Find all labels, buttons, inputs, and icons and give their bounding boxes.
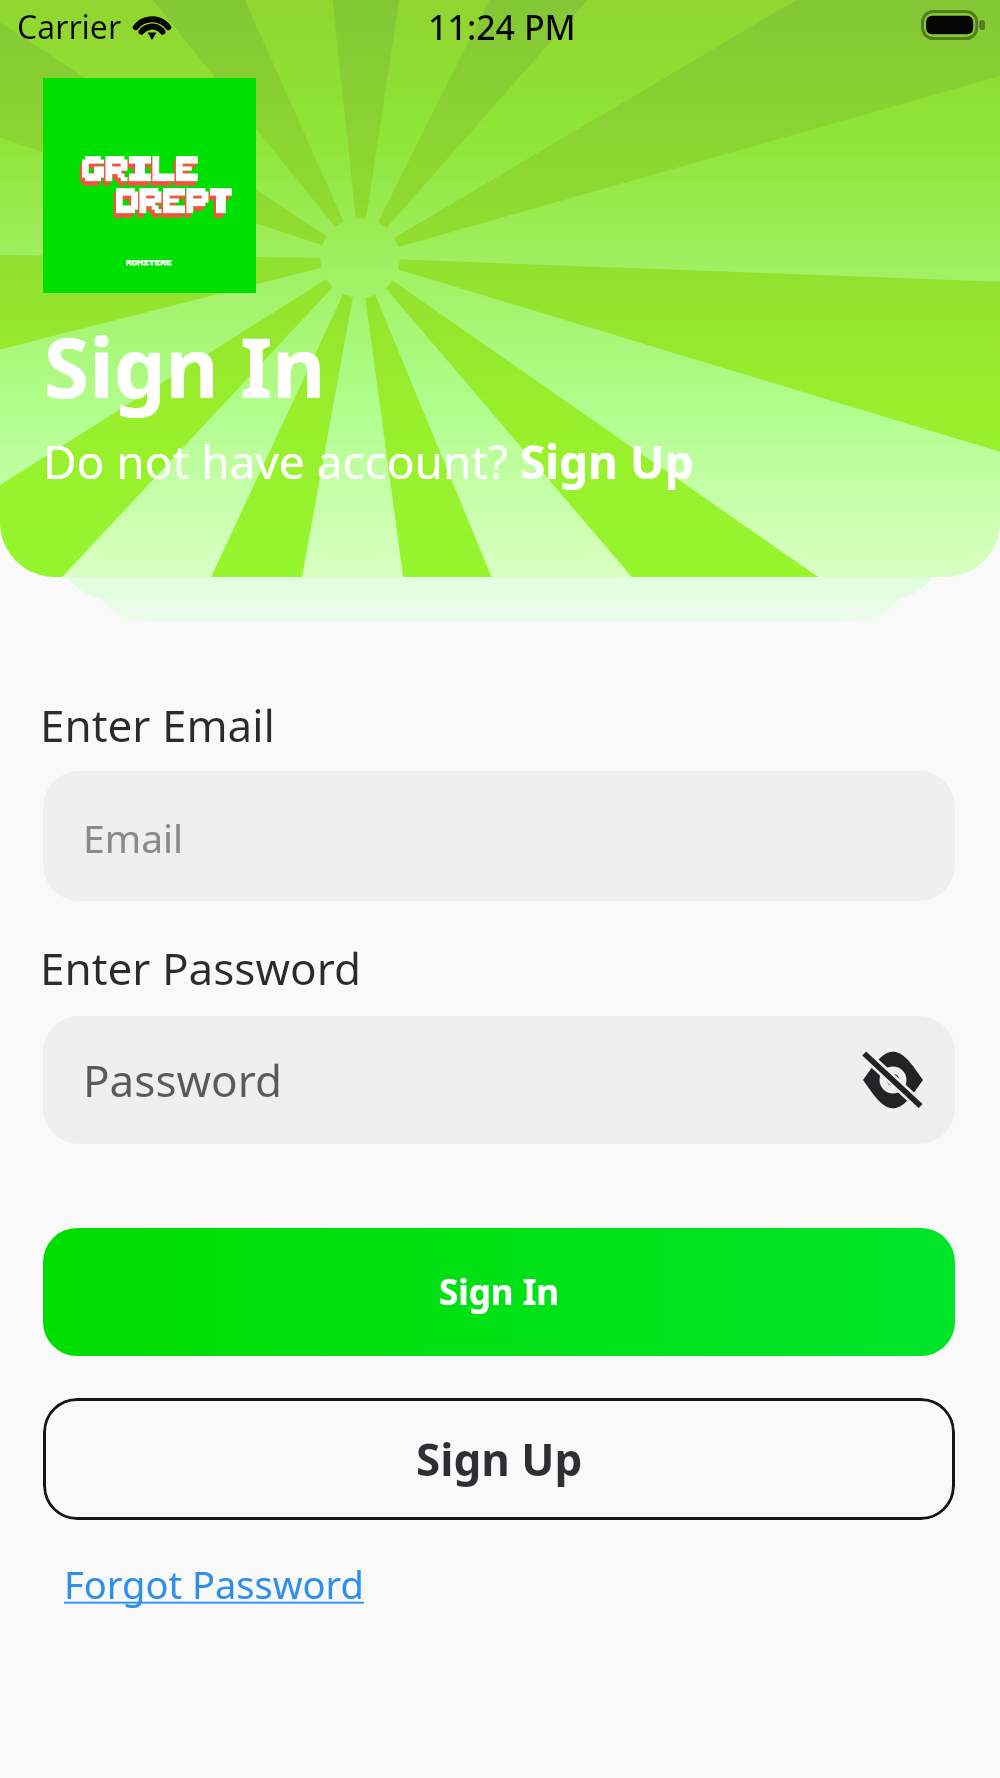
button[interactable]: Sign Up — [43, 1398, 955, 1520]
button[interactable]: Password — [43, 1016, 955, 1144]
staticText: Carrier — [17, 5, 122, 49]
staticText: Do not have account? Sign Up — [43, 430, 694, 493]
staticText: 11:24 PM — [428, 4, 576, 50]
button[interactable]: Forgot Password — [64, 1558, 364, 1610]
button[interactable]: Email — [43, 771, 955, 901]
button[interactable]: Sign In — [43, 1228, 955, 1356]
staticText: Sign In — [44, 310, 326, 422]
staticText: Enter Password — [40, 938, 361, 998]
staticText: Password — [83, 1050, 283, 1110]
button[interactable]: Show password — [853, 1040, 933, 1120]
staticText: Enter Email — [40, 695, 275, 755]
staticText: Sign Up — [416, 1429, 583, 1489]
staticText: Sign In — [439, 1268, 560, 1316]
staticText: Email — [83, 811, 184, 864]
staticText: Forgot Password — [64, 1558, 364, 1610]
